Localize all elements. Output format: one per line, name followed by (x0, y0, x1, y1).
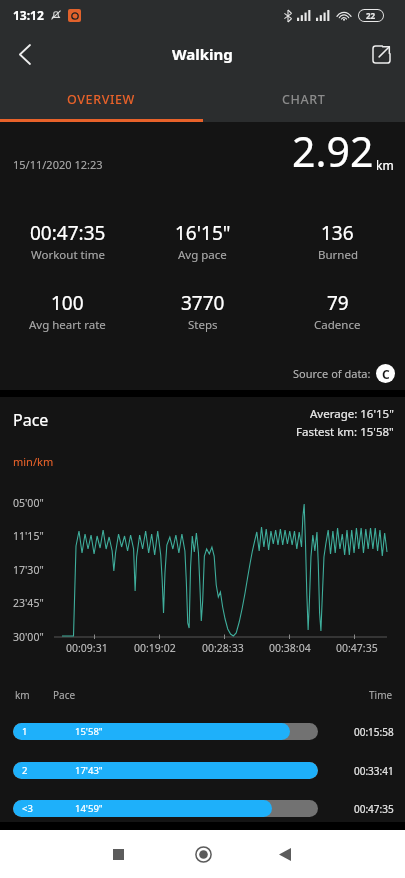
staticText: Walking (172, 44, 233, 64)
staticText: 2 (22, 764, 28, 777)
staticText: 17'30" (13, 563, 44, 577)
button[interactable]: 1 (13, 723, 394, 740)
staticText: Workout time (31, 247, 105, 263)
staticText: 15/11/2020 12:23 (13, 157, 103, 172)
staticText: Source of data: (293, 366, 371, 381)
button[interactable]: 2 (13, 762, 394, 779)
staticText: 17'43" (75, 764, 103, 777)
staticText: Fastest km: 15'58" (296, 424, 394, 440)
staticText: 23'45" (13, 596, 44, 610)
staticText: 00:15:58 (354, 725, 394, 739)
staticText: 00:33:41 (354, 764, 394, 778)
staticText: Avg heart rate (29, 317, 106, 333)
button[interactable]: Back (261, 830, 309, 878)
staticText: 00:47:35 (336, 641, 378, 655)
staticText: C (382, 366, 390, 382)
staticText: Avg pace (178, 247, 227, 263)
staticText: 79 (327, 290, 349, 316)
staticText: 00:28:33 (202, 641, 244, 655)
button[interactable]: <3 (13, 800, 394, 817)
staticText: Pace (13, 409, 49, 431)
staticText: 05'00" (13, 496, 44, 510)
staticText: 2.92 (292, 123, 374, 179)
staticText: 100 (51, 290, 84, 316)
staticText: 15'58" (75, 725, 103, 738)
staticText: OVERVIEW (67, 91, 135, 108)
staticText: 00:19:02 (134, 641, 176, 655)
staticText: 136 (321, 220, 354, 246)
staticText: km (376, 157, 394, 173)
staticText: Average: 16'15" (310, 406, 394, 422)
staticText: <3 (22, 802, 33, 815)
staticText: 13:12 (13, 7, 44, 23)
staticText: Steps (188, 317, 218, 333)
staticText: 00:09:31 (66, 641, 108, 655)
staticText: 16'15" (175, 220, 231, 246)
staticText: Time (369, 688, 393, 702)
staticText: Burned (318, 247, 358, 263)
staticText: Pace (53, 688, 76, 702)
staticText: 30'00" (13, 630, 44, 644)
button[interactable]: CHART (202, 78, 405, 122)
staticText: CHART (282, 91, 326, 108)
staticText: km (15, 688, 30, 702)
staticText: min/km (13, 454, 54, 469)
staticText: 1 (22, 725, 28, 738)
staticText: 00:38:04 (269, 641, 311, 655)
button[interactable]: Recent apps (94, 830, 142, 878)
button[interactable]: Back (0, 30, 48, 78)
button[interactable]: Home (179, 830, 227, 878)
button[interactable]: OVERVIEW (0, 78, 202, 122)
staticText: 22 (366, 10, 376, 21)
staticText: 11'15" (13, 529, 44, 543)
staticText: 00:47:35 (30, 220, 106, 246)
staticText: Cadence (314, 317, 361, 333)
button[interactable]: Open in new window (357, 30, 405, 78)
staticText: 3770 (181, 290, 225, 316)
staticText: 00:47:35 (354, 802, 394, 816)
staticText: 14'59" (75, 802, 103, 815)
